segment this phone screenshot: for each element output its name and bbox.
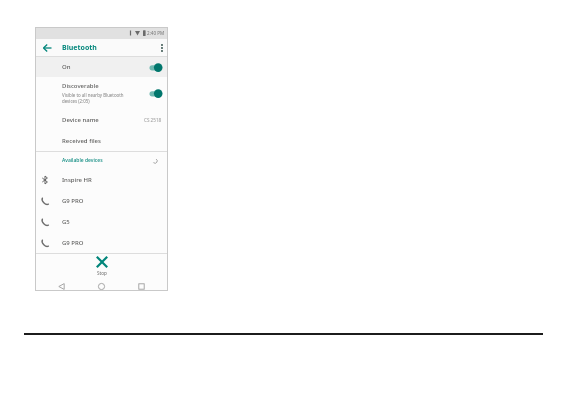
button[interactable]: On	[35, 57, 168, 77]
button[interactable]	[121, 281, 161, 291]
button[interactable]: Discoverable	[35, 77, 168, 109]
button[interactable]: Inspire HR	[35, 169, 168, 190]
staticText: 2:40 PM	[147, 30, 165, 36]
staticText: Discoverable	[62, 82, 99, 90]
staticText: G9 PRO	[62, 239, 84, 247]
button[interactable]	[42, 281, 81, 291]
staticText: CS 2518	[144, 117, 162, 123]
staticText: Available devices	[62, 157, 103, 164]
button[interactable]: G9 PRO	[35, 232, 168, 253]
staticText: Received files	[62, 137, 101, 145]
staticText: Device name	[62, 116, 99, 124]
staticText: Visible to all nearby Bluetooth	[62, 92, 124, 98]
staticText: G5	[62, 218, 70, 226]
staticText: G9 PRO	[62, 197, 84, 205]
button[interactable]: Stop	[35, 254, 168, 281]
staticText: On	[62, 63, 71, 71]
button[interactable]	[35, 39, 59, 56]
staticText: devices (2:05)	[62, 98, 90, 104]
staticText: Bluetooth	[62, 43, 97, 53]
button[interactable]	[156, 39, 168, 56]
button[interactable]: G9 PRO	[35, 190, 168, 211]
staticText: Inspire HR	[62, 176, 92, 184]
button[interactable]	[81, 281, 121, 291]
button[interactable]: Received files	[35, 131, 168, 151]
button[interactable]: G5	[35, 211, 168, 232]
staticText: Stop	[97, 270, 107, 276]
button[interactable]: Device name	[35, 109, 168, 131]
